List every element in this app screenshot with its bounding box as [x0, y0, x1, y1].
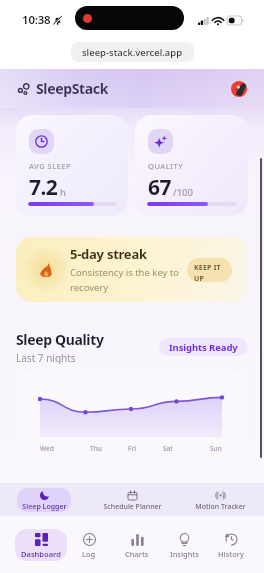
button[interactable]: Sleep Logger — [17, 488, 71, 512]
staticText: h — [60, 186, 66, 199]
staticText: Consistency is the key to recovery — [70, 266, 194, 294]
staticText: Dashboard — [21, 549, 61, 559]
button[interactable]: Log — [63, 529, 115, 561]
button[interactable]: Charts — [111, 529, 163, 561]
button[interactable]: Motion Tracker — [190, 488, 250, 512]
button[interactable]: History — [205, 529, 257, 561]
staticText: Sleep Logger — [22, 502, 67, 512]
staticText: Insights Ready — [169, 341, 238, 354]
staticText: Insights — [170, 549, 199, 559]
staticText: Last 7 nights — [16, 351, 76, 364]
button[interactable]: Insights — [158, 529, 210, 561]
staticText: Sun — [210, 444, 222, 453]
staticText: History — [218, 549, 244, 559]
staticText: /100 — [173, 186, 193, 199]
staticText: sleep-stack.vercel.app — [82, 46, 183, 59]
staticText: 67 — [148, 173, 171, 202]
button[interactable]: sleep-stack.vercel.app — [71, 42, 194, 62]
staticText: 7.2 — [29, 173, 58, 202]
staticText: Log — [82, 549, 96, 559]
button[interactable]: AVG SLEEP — [16, 115, 128, 216]
staticText: Sleep Quality — [16, 330, 104, 349]
button[interactable]: 5-day streak — [16, 237, 248, 302]
button[interactable]: Dashboard — [15, 529, 67, 561]
staticText: KEEP IT UP — [194, 263, 221, 282]
staticText: Schedule Planner — [103, 502, 162, 512]
staticText: 5-day streak — [70, 245, 147, 263]
staticText: Thu — [90, 444, 102, 453]
staticText: Wed — [40, 444, 54, 453]
staticText: Charts — [125, 549, 149, 559]
staticText: SleepStack — [36, 79, 109, 98]
button[interactable]: QUALITY — [135, 115, 248, 216]
staticText: Motion Tracker — [195, 502, 246, 512]
staticText: Sat — [163, 444, 173, 453]
button[interactable]: KEEP IT UP — [187, 258, 232, 282]
staticText: Fri — [128, 444, 136, 453]
button[interactable]: Profile — [231, 81, 247, 97]
staticText: 10:38 — [22, 12, 51, 28]
button[interactable]: Schedule Planner — [100, 488, 164, 512]
button[interactable]: Insights Ready — [159, 338, 248, 356]
staticText: AVG SLEEP — [29, 161, 72, 171]
staticText: QUALITY — [148, 161, 184, 171]
